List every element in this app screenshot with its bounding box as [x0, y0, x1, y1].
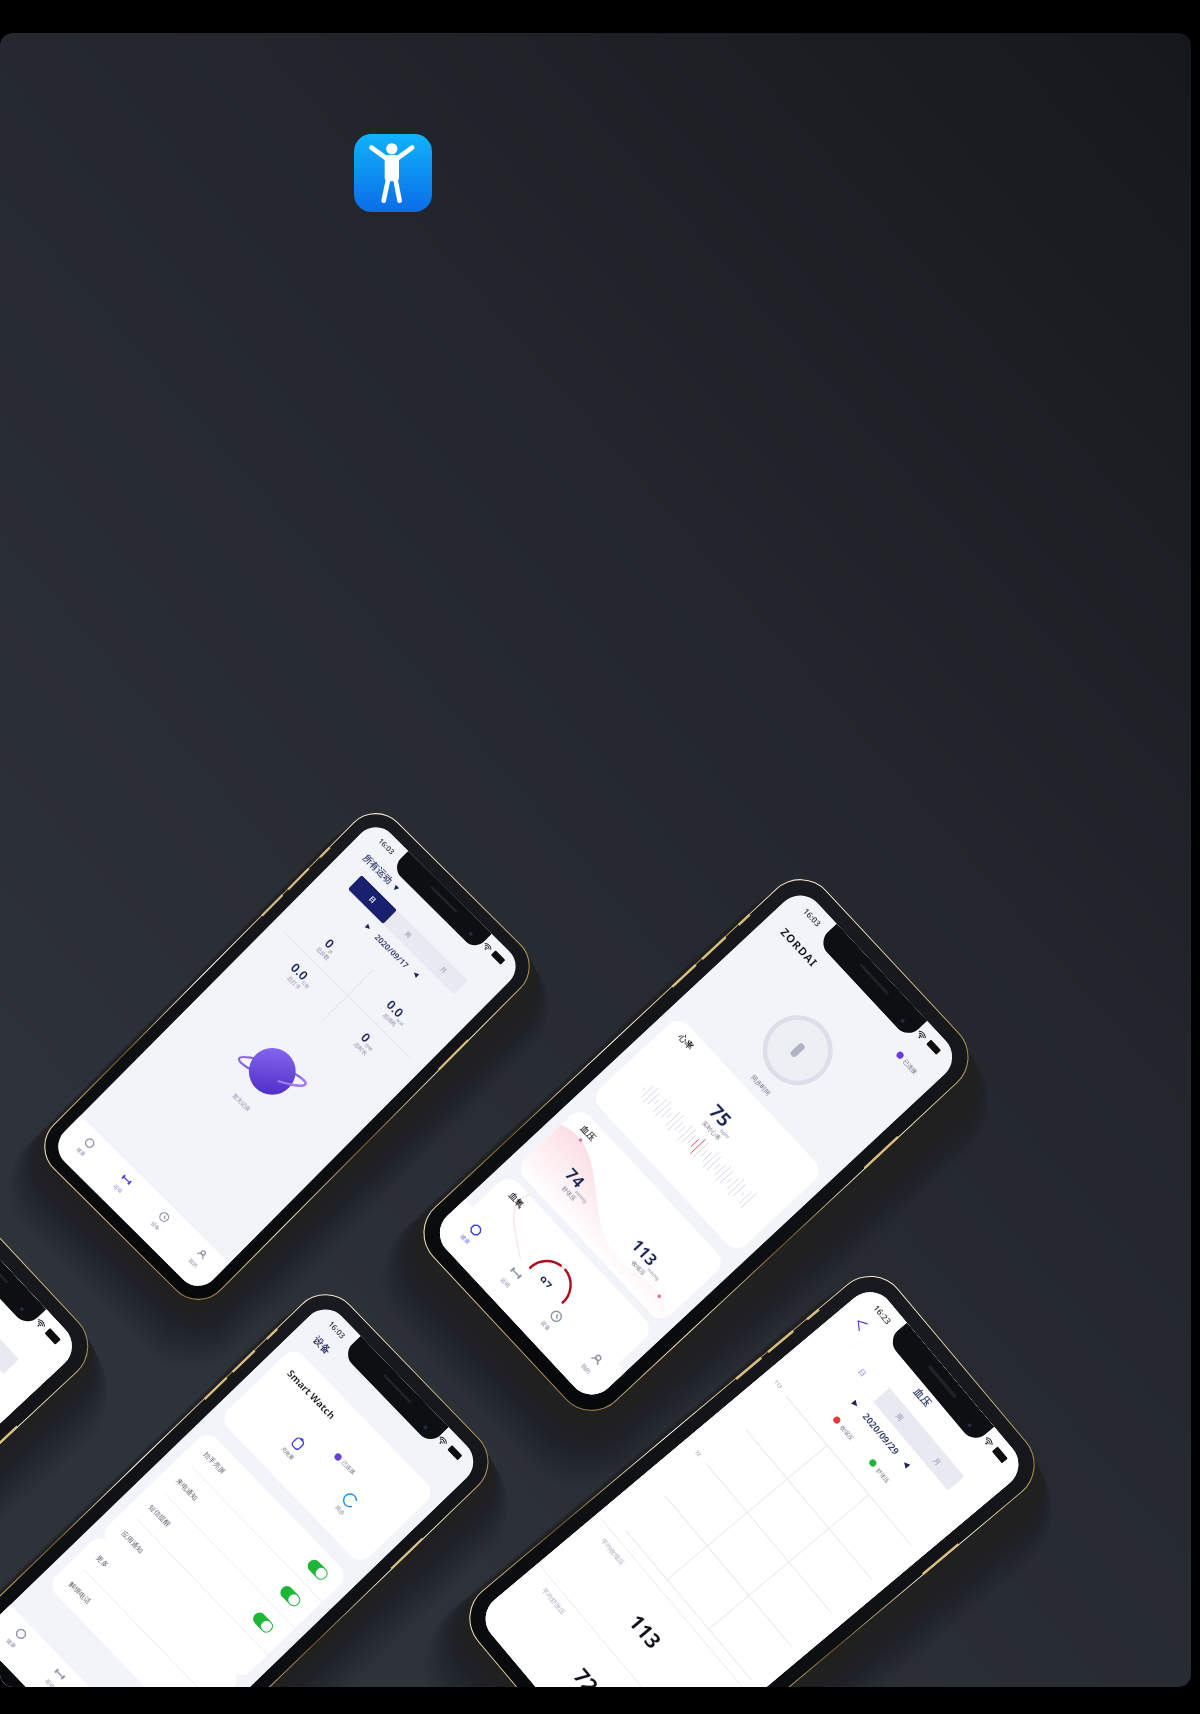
button[interactable]: 短信提醒 — [137, 1493, 284, 1644]
button[interactable]: 75 — [590, 1015, 824, 1254]
staticText: 舒张压 — [561, 1184, 578, 1202]
staticText: 暂无记录 — [231, 1092, 252, 1114]
staticText: 0 — [357, 1029, 375, 1047]
staticText: 16:03 — [376, 836, 397, 856]
staticText: 月 — [438, 965, 449, 976]
button[interactable]: 所有运动 — [360, 852, 402, 894]
button[interactable]: 0.0 — [258, 935, 342, 1019]
staticText: 16:23 — [870, 1302, 894, 1327]
button[interactable]: Smart Watch — [218, 1346, 436, 1566]
staticText: 设备 — [539, 1319, 552, 1333]
staticText: 短信提醒 — [147, 1502, 173, 1529]
button[interactable]: 抬手亮屏 — [191, 1440, 339, 1591]
staticText: 113 — [623, 1608, 669, 1655]
staticText: kcal — [395, 1017, 406, 1027]
staticText: 分钟 — [363, 1042, 374, 1053]
staticText: 公里 — [300, 980, 310, 990]
staticText: 97 — [535, 1272, 556, 1293]
staticText: 16:03 — [325, 1319, 348, 1342]
button[interactable]: 应用通知 — [109, 1519, 257, 1670]
staticText: mmHg — [574, 1189, 589, 1204]
button[interactable]: 97 — [450, 1173, 655, 1385]
button[interactable]: Paired watch — [677, 940, 904, 1174]
staticText: 来电通知 — [174, 1476, 200, 1503]
staticText: 设备 — [150, 1220, 161, 1231]
staticText: 平均收缩压 — [599, 1537, 626, 1567]
staticText: 0.0 — [383, 996, 407, 1021]
button[interactable]: App icon — [354, 134, 432, 212]
button[interactable]: 解绑电话 — [57, 1570, 204, 1687]
staticText: 113 — [627, 1234, 663, 1271]
button[interactable]: 0 — [325, 1001, 408, 1085]
staticText: 已连接 — [902, 1058, 919, 1075]
button[interactable]: 设备 — [518, 1285, 586, 1354]
button[interactable]: 我的 — [558, 1329, 626, 1397]
staticText: 周 — [403, 930, 413, 940]
staticText: 所有运动 — [360, 852, 395, 887]
button[interactable]: 0 — [287, 906, 370, 989]
staticText: 周 — [894, 1411, 906, 1423]
staticText: 72 — [568, 1662, 606, 1687]
button[interactable]: 健康 — [0, 1605, 49, 1670]
button[interactable]: 月 — [0, 1318, 19, 1374]
button[interactable]: 周 — [873, 1388, 927, 1446]
staticText: 血压 — [578, 1123, 598, 1144]
staticText: 充电量 — [279, 1445, 296, 1462]
staticText: 日 — [367, 895, 378, 905]
staticText: 运动 — [43, 1677, 56, 1687]
staticText: 实时心率 — [700, 1119, 723, 1143]
staticText: ZORDAI — [778, 925, 821, 970]
button[interactable]: 同步 — [331, 1489, 361, 1519]
staticText: 平均舒张压 — [540, 1586, 567, 1617]
staticText: 健康 — [5, 1637, 17, 1650]
staticText: 健康 — [459, 1233, 472, 1247]
button[interactable]: 运动 — [478, 1242, 545, 1311]
button[interactable]: 运动 — [23, 1645, 88, 1687]
button[interactable]: 74 — [515, 1106, 727, 1324]
staticText: 75 — [703, 1098, 737, 1132]
staticText: 已连接 — [340, 1459, 357, 1476]
button[interactable]: 设备 — [62, 1685, 128, 1687]
button[interactable]: 健康 — [56, 1116, 117, 1176]
staticText: 血氧 — [506, 1190, 526, 1211]
button[interactable]: 健康 — [438, 1199, 505, 1268]
button[interactable]: 月 — [418, 945, 468, 995]
staticText: 设备 — [310, 1334, 333, 1357]
button[interactable]: 0.0 — [354, 972, 437, 1056]
button[interactable]: Back — [852, 1315, 870, 1333]
staticText: 同步时间 — [749, 1073, 772, 1097]
button[interactable]: 充电量 — [279, 1432, 309, 1462]
staticText: 更多 — [94, 1553, 111, 1570]
button[interactable]: 更多 — [84, 1543, 232, 1687]
button[interactable]: 设备 — [130, 1189, 192, 1250]
staticText: Smart Watch — [284, 1366, 339, 1422]
button[interactable]: 日 — [348, 875, 397, 924]
staticText: 2020/09/17 — [372, 931, 411, 970]
button[interactable]: 来电通知 — [164, 1466, 312, 1617]
staticText: 我的 — [579, 1363, 593, 1376]
staticText: 健康 — [75, 1146, 87, 1157]
staticText: 应用通知 — [120, 1529, 145, 1555]
staticText: 舒张压 — [875, 1466, 892, 1485]
staticText: 0 — [321, 935, 339, 953]
button[interactable]: 我的 — [168, 1226, 229, 1288]
button[interactable]: 运动 — [93, 1152, 154, 1213]
staticText: 2020/09/29 — [860, 1410, 902, 1458]
staticText: 血压 — [911, 1386, 934, 1410]
staticText: 运动 — [499, 1276, 512, 1290]
staticText: 113 — [773, 1379, 784, 1390]
staticText: 解绑电话 — [67, 1580, 93, 1606]
staticText: 16:03 — [801, 906, 824, 929]
staticText: 运动 — [112, 1183, 124, 1194]
button[interactable]: 日 — [836, 1343, 890, 1402]
staticText: 心率 — [676, 1032, 696, 1053]
staticText: mmHg — [646, 1266, 661, 1282]
staticText: 月 — [931, 1456, 943, 1468]
staticText: 72 — [693, 1449, 702, 1458]
staticText: 同步 — [334, 1504, 346, 1517]
button[interactable]: 周 — [383, 910, 433, 959]
staticText: 抬手亮屏 — [202, 1450, 227, 1476]
button[interactable]: 月 — [910, 1432, 964, 1491]
staticText: 日 — [856, 1367, 868, 1379]
